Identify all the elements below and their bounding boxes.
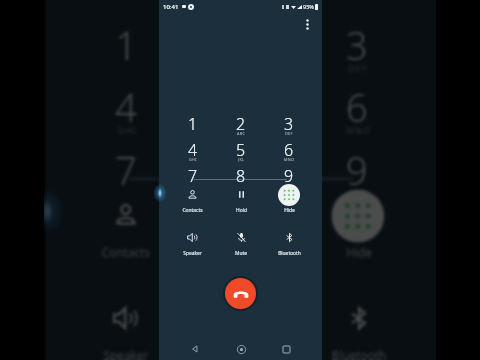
- staticText: JKL: [235, 125, 252, 137]
- button[interactable]: 4: [168, 140, 217, 166]
- staticText: Speaker: [103, 348, 149, 360]
- staticText: DEF: [285, 131, 293, 136]
- button[interactable]: Back: [185, 339, 205, 359]
- staticText: 1: [188, 113, 198, 135]
- staticText: Contacts: [100, 245, 151, 262]
- button[interactable]: Contacts: [168, 183, 217, 217]
- button[interactable]: End call: [225, 278, 256, 309]
- staticText: GHI: [189, 157, 197, 162]
- staticText: 5: [236, 139, 246, 161]
- button[interactable]: Speaker: [168, 226, 217, 260]
- staticText: Hold: [236, 207, 247, 214]
- staticText: GHI: [117, 125, 136, 137]
- button[interactable]: 1: [67, 21, 185, 84]
- button[interactable]: 4: [67, 84, 185, 146]
- staticText: Mute: [235, 250, 247, 257]
- button[interactable]: 7: [168, 166, 217, 192]
- staticText: 6: [346, 81, 370, 134]
- staticText: Bluetooth: [331, 348, 387, 360]
- button[interactable]: 6: [300, 84, 415, 146]
- button[interactable]: Hold: [217, 183, 265, 217]
- staticText: 3: [346, 19, 370, 72]
- staticText: Mute: [228, 348, 257, 360]
- button[interactable]: 2: [217, 114, 265, 140]
- staticText: 95%: [303, 3, 314, 10]
- button[interactable]: 3: [265, 114, 313, 140]
- button[interactable]: Hide: [300, 187, 415, 269]
- button[interactable]: Bluetooth: [300, 291, 415, 360]
- button[interactable]: Hold: [185, 187, 300, 269]
- staticText: 10:41: [163, 3, 179, 11]
- staticText: Bluetooth: [278, 250, 301, 257]
- button[interactable]: 5: [217, 140, 265, 166]
- button[interactable]: Home: [231, 339, 251, 359]
- button[interactable]: Mute: [217, 226, 265, 260]
- button[interactable]: Speaker: [67, 291, 185, 360]
- staticText: Hide: [346, 245, 372, 262]
- button[interactable]: 9: [265, 166, 313, 192]
- staticText: 1: [115, 19, 139, 72]
- button[interactable]: 9: [300, 146, 415, 209]
- staticText: Hold: [230, 245, 257, 262]
- button[interactable]: 8: [217, 166, 265, 192]
- staticText: JKL: [238, 157, 245, 162]
- button[interactable]: 7: [67, 146, 185, 209]
- staticText: 9: [284, 165, 294, 187]
- staticText: 7: [188, 165, 198, 187]
- button[interactable]: 8: [185, 146, 300, 209]
- staticText: MNO: [346, 125, 372, 137]
- staticText: 3: [284, 113, 294, 135]
- button[interactable]: 6: [265, 140, 313, 166]
- button[interactable]: 3: [300, 21, 415, 84]
- staticText: 9: [346, 144, 370, 197]
- staticText: MNO: [284, 157, 295, 162]
- staticText: 4: [188, 139, 198, 161]
- staticText: Hide: [284, 207, 295, 214]
- staticText: 2: [236, 113, 246, 135]
- staticText: 8: [230, 144, 254, 197]
- staticText: Contacts: [182, 207, 203, 214]
- button[interactable]: Contacts: [67, 187, 185, 269]
- staticText: ABC: [237, 131, 246, 136]
- button[interactable]: 1: [168, 114, 217, 140]
- staticText: 4: [115, 81, 139, 134]
- button[interactable]: Hide: [265, 183, 313, 217]
- button[interactable]: Mute: [185, 291, 300, 360]
- button[interactable]: Recents: [276, 339, 296, 359]
- staticText: 7: [115, 144, 139, 197]
- staticText: 8: [236, 165, 246, 187]
- staticText: 6: [284, 139, 294, 161]
- staticText: Speaker: [183, 250, 202, 257]
- button[interactable]: 5: [185, 84, 300, 146]
- staticText: 5: [230, 81, 254, 134]
- button[interactable]: Bluetooth: [265, 226, 313, 260]
- button[interactable]: More options: [299, 16, 316, 33]
